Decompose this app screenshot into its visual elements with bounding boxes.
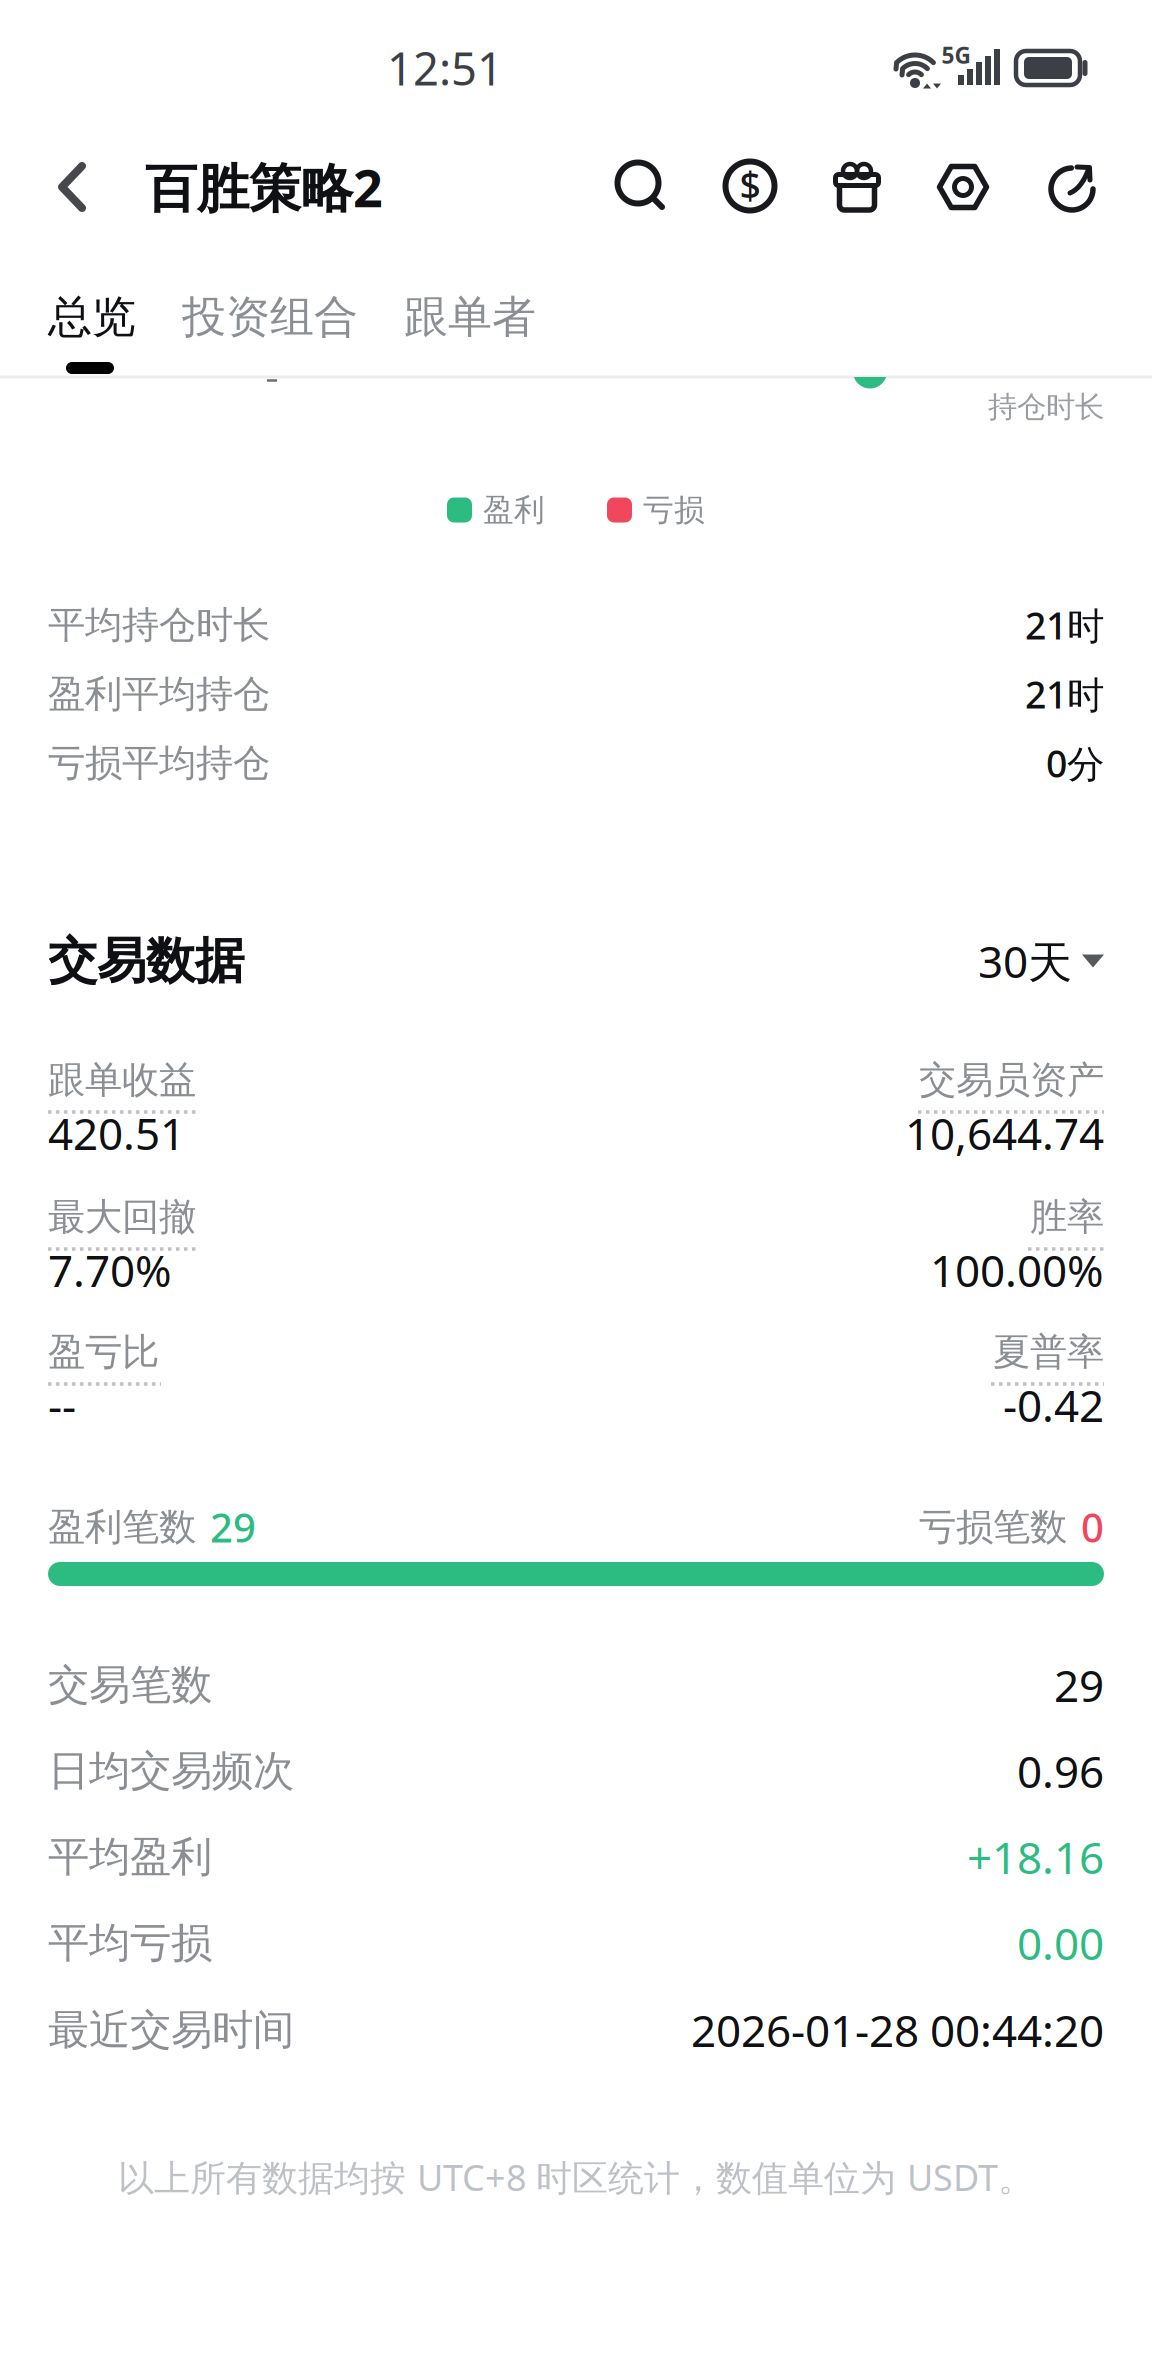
staticText: 交易数据 [48,931,244,991]
staticText: 盈利平均持仓 [48,671,270,717]
staticText: +18.16 [967,1828,1104,1886]
button[interactable] [609,154,673,218]
staticText: 交易笔数 [48,1660,212,1710]
staticText: 百胜策略2 [145,152,383,222]
staticText: 平均亏损 [48,1918,212,1968]
staticText: 10,644.74 [905,1104,1104,1162]
staticText: 持仓时长 [988,389,1104,425]
button[interactable]: 跟单者 [404,290,536,344]
button[interactable]: 总览 [48,290,136,344]
staticText: 日均交易频次 [48,1746,294,1796]
staticText: 交易员资产 [919,1057,1104,1103]
staticText: 盈利 [483,491,545,529]
staticText: 以上所有数据均按 UTC+8 时区统计，数值单位为 USDT。 [118,2153,1034,2201]
staticText: 12:51 [387,38,503,98]
button[interactable] [931,155,995,219]
button[interactable] [44,159,100,215]
staticText: $ [739,160,760,210]
staticText: 2026-01-28 00:44:20 [691,2001,1104,2059]
staticText: 0.96 [1017,1742,1104,1800]
staticText: 420.51 [48,1104,185,1162]
staticText: 最近交易时间 [48,2005,294,2055]
staticText: 夏普率 [993,1329,1104,1375]
staticText: 跟单收益 [48,1057,196,1103]
staticText: 胜率 [1030,1194,1104,1240]
staticText: 100.00% [930,1241,1104,1299]
staticText: 最大回撤 [48,1194,196,1240]
staticText: 平均盈利 [48,1832,212,1882]
button[interactable]: 投资组合 [182,290,358,344]
staticText: 亏损平均持仓 [48,740,270,786]
staticText: -- [48,1376,76,1434]
staticText: 跟单者 [404,290,536,344]
staticText: 21时 [1025,669,1104,719]
staticText: 亏损笔数 [919,1504,1067,1550]
staticText: 29 [210,1500,256,1553]
staticText: 0 [1081,1500,1104,1553]
button[interactable]: $ [718,154,782,218]
staticText: -0.42 [1003,1376,1104,1434]
staticText: 盈利笔数 [48,1504,196,1550]
staticText: 亏损 [643,491,705,529]
staticText: 盈亏比 [48,1329,159,1375]
staticText: 7.70% [48,1241,172,1299]
staticText: 总览 [48,290,136,344]
staticText: 21时 [1025,600,1104,650]
staticText: 0.00 [1017,1914,1104,1972]
button[interactable]: 30天 [978,932,1104,990]
staticText: 平均持仓时长 [48,602,270,648]
staticText: 投资组合 [182,290,358,344]
staticText: 29 [1054,1656,1104,1714]
staticText: 30天 [978,932,1072,990]
button[interactable] [1040,156,1104,220]
staticText: 5G [941,40,970,70]
button[interactable] [825,155,889,219]
staticText: 0分 [1046,738,1104,788]
